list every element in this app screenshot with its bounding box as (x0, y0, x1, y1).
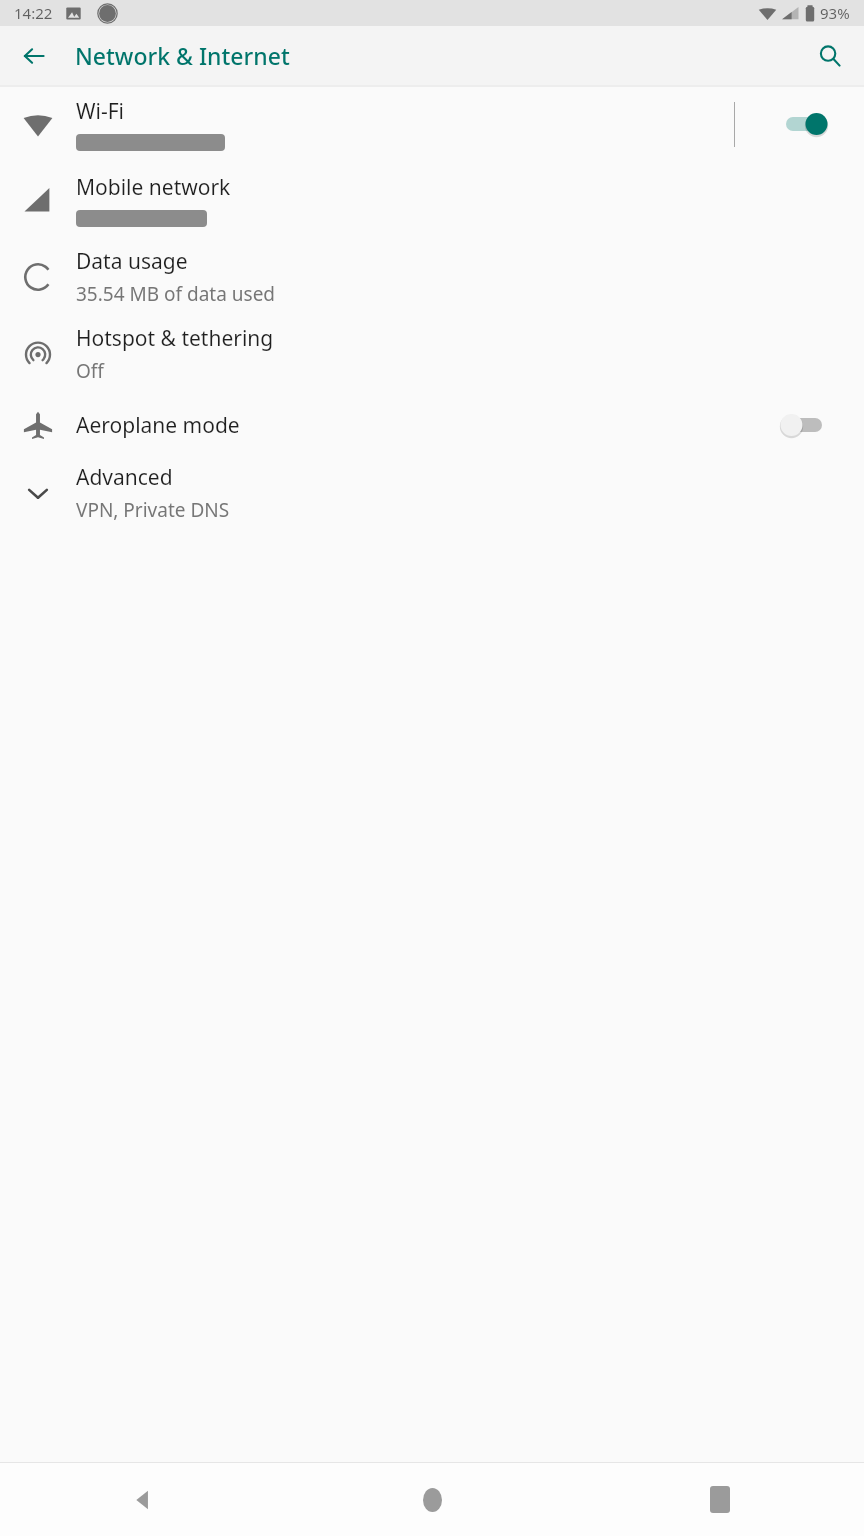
staticText: Aeroplane mode (76, 411, 240, 440)
staticText: Wi-Fi (76, 97, 125, 126)
staticText: Off (76, 358, 104, 384)
button[interactable]: Hotspot & tethering (0, 315, 864, 392)
button[interactable]: Toggle on (784, 104, 840, 144)
button[interactable]: Mobile network (0, 161, 864, 238)
button[interactable]: Data usage (0, 238, 864, 315)
staticText: Data usage (76, 247, 188, 276)
button[interactable]: Aeroplane mode (0, 392, 864, 458)
button[interactable]: Recent apps (576, 1463, 864, 1536)
staticText: 35.54 MB of data used (76, 281, 276, 307)
button[interactable]: Advanced (0, 458, 864, 528)
staticText: Advanced (76, 463, 173, 492)
staticText: 14:22 (14, 3, 53, 23)
button[interactable]: Home (288, 1463, 576, 1536)
button[interactable]: Toggle off (784, 405, 840, 445)
button[interactable]: Search (806, 32, 854, 80)
staticText: 93% (820, 3, 850, 23)
button[interactable]: Back (10, 32, 58, 80)
button[interactable]: Back (0, 1463, 288, 1536)
staticText: VPN, Private DNS (76, 497, 230, 523)
staticText: Hotspot & tethering (76, 324, 274, 353)
staticText: Network & Internet (75, 40, 290, 71)
button[interactable]: Wi-Fi (0, 87, 864, 161)
staticText: Mobile network (76, 173, 231, 202)
